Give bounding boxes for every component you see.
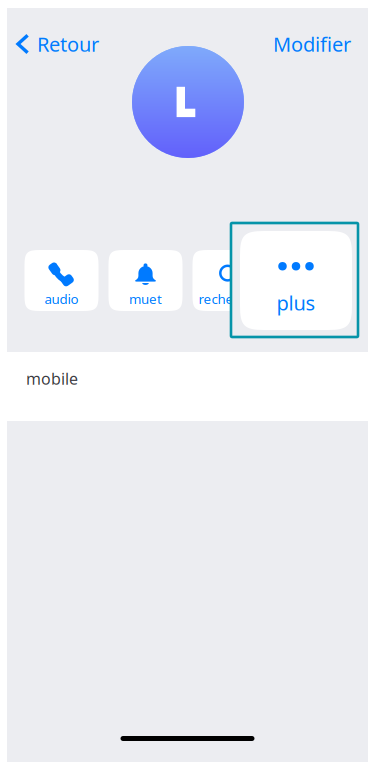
staticText: plus — [276, 289, 315, 316]
staticText: audio — [44, 290, 78, 308]
staticText: Retour — [37, 31, 99, 57]
button[interactable]: Modifier — [262, 22, 368, 66]
button[interactable]: audio — [24, 250, 98, 311]
staticText: Modifier — [273, 31, 351, 57]
staticText: mobile — [26, 368, 78, 389]
staticText: plus — [301, 286, 326, 303]
button[interactable]: plus — [240, 231, 352, 330]
button[interactable]: muet — [108, 250, 182, 311]
button[interactable]: recherche — [192, 250, 266, 311]
button[interactable]: plus — [276, 250, 350, 311]
button[interactable]: Retour — [7, 22, 107, 66]
staticText: muet — [129, 290, 162, 308]
staticText: recherche — [198, 290, 260, 308]
